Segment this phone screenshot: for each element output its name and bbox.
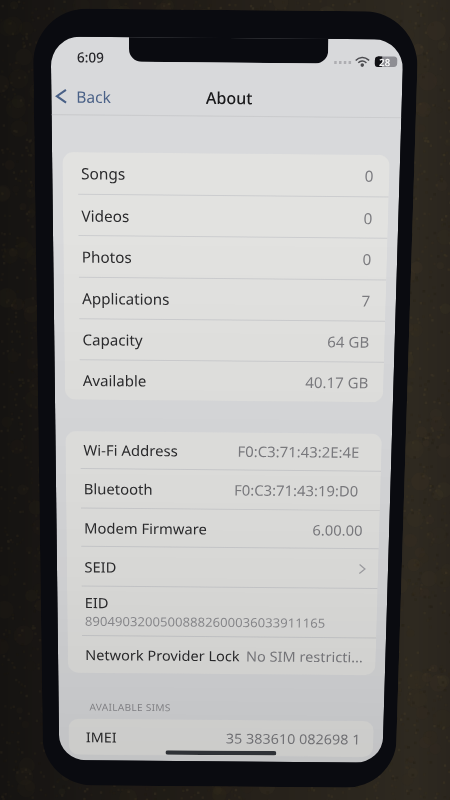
button[interactable]: Modem Firmware (66, 508, 380, 548)
staticText: Back (76, 86, 112, 107)
staticText: Applications (82, 288, 170, 309)
staticText: 89049032005008882600036033911165 (85, 613, 326, 631)
staticText: SEID (84, 557, 117, 576)
staticText: IMEI (86, 728, 118, 746)
staticText: Network Provider Lock (85, 645, 240, 665)
staticText: 64 GB (327, 331, 370, 352)
button[interactable]: SEID (67, 547, 379, 588)
staticText: 7 (361, 290, 371, 311)
staticText: EID (85, 593, 109, 612)
staticText: F0:C3:71:43:2E:4E (237, 441, 360, 462)
staticText: 0 (363, 208, 373, 228)
button[interactable]: Photos (63, 236, 387, 279)
staticText: 6:09 (77, 47, 104, 67)
staticText: Modem Firmware (84, 518, 207, 538)
button[interactable]: Wi-Fi Address (65, 431, 382, 471)
button[interactable]: Back (51, 81, 120, 112)
staticText: Songs (81, 163, 125, 184)
button[interactable]: Songs (62, 152, 390, 196)
staticText: No SIM restricti... (246, 647, 363, 666)
staticText: 28 (379, 55, 391, 69)
staticText: 35 383610 082698 1 (226, 729, 361, 748)
staticText: Available (83, 370, 147, 390)
button[interactable]: Available (65, 360, 384, 402)
staticText: AVAILABLE SIMS (89, 700, 171, 714)
staticText: Photos (82, 246, 133, 267)
staticText: 40.17 GB (305, 372, 369, 392)
staticText: Videos (81, 205, 129, 226)
button[interactable]: Capacity (64, 319, 385, 362)
staticText: F0:C3:71:43:19:D0 (234, 480, 359, 500)
button[interactable]: Videos (63, 195, 389, 238)
button[interactable]: IMEI (68, 718, 374, 757)
staticText: 6.00.00 (312, 520, 363, 540)
button[interactable]: Network Provider Lock (67, 636, 376, 675)
staticText: About (206, 86, 253, 109)
staticText: 0 (364, 165, 374, 186)
staticText: Wi-Fi Address (83, 440, 178, 460)
button[interactable]: EID (67, 586, 378, 637)
button[interactable]: Applications (64, 278, 386, 321)
button[interactable]: Bluetooth (66, 469, 381, 510)
staticText: Bluetooth (84, 479, 153, 499)
staticText: 0 (362, 249, 372, 269)
staticText: Capacity (82, 329, 143, 350)
